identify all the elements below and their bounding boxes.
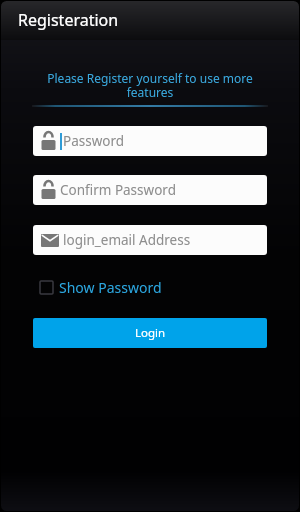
button[interactable]: login_email Address [33,225,267,255]
button[interactable]: Show Password [40,278,162,297]
staticText: Confirm Password [60,181,176,199]
staticText: Password [63,132,125,150]
staticText: login_email Address [63,231,191,249]
button[interactable]: Password [33,126,267,156]
staticText: Registeration [18,9,119,31]
button[interactable]: Confirm Password [33,175,267,205]
staticText: Show Password [59,278,162,297]
staticText: Login [135,325,166,341]
button[interactable]: Login [33,318,267,348]
staticText: Please Register yourself to use more fea… [0,70,300,101]
